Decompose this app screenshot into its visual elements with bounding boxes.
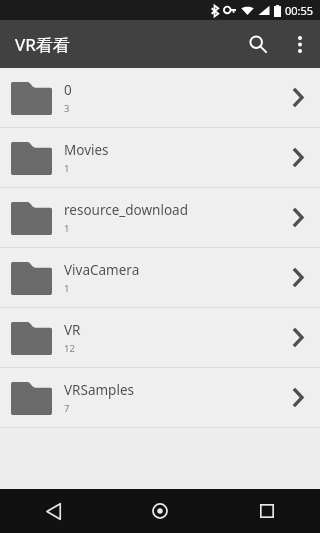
- staticText: 0: [64, 81, 72, 99]
- staticText: VR: [64, 321, 81, 339]
- button[interactable]: VR: [0, 308, 320, 367]
- button[interactable]: resource_download: [0, 188, 320, 247]
- button[interactable]: Movies: [0, 128, 320, 187]
- staticText: Movies: [64, 141, 109, 159]
- staticText: 00:55: [285, 3, 314, 18]
- button[interactable]: VRSamples: [0, 368, 320, 427]
- button[interactable]: Home: [106, 489, 213, 533]
- button[interactable]: 0: [0, 68, 320, 127]
- button[interactable]: VivaCamera: [0, 248, 320, 307]
- button[interactable]: More options: [280, 24, 320, 64]
- staticText: VR看看: [15, 33, 70, 56]
- staticText: 1: [64, 222, 70, 235]
- staticText: 3: [64, 102, 70, 115]
- button[interactable]: Search: [236, 22, 280, 66]
- staticText: VRSamples: [64, 381, 134, 399]
- staticText: 7: [64, 402, 70, 415]
- button[interactable]: Recent apps: [213, 489, 320, 533]
- staticText: VivaCamera: [64, 261, 140, 279]
- button[interactable]: Back: [0, 489, 106, 533]
- staticText: 1: [64, 282, 70, 295]
- staticText: 1: [64, 162, 70, 175]
- staticText: 12: [64, 342, 75, 355]
- staticText: resource_download: [64, 201, 188, 219]
